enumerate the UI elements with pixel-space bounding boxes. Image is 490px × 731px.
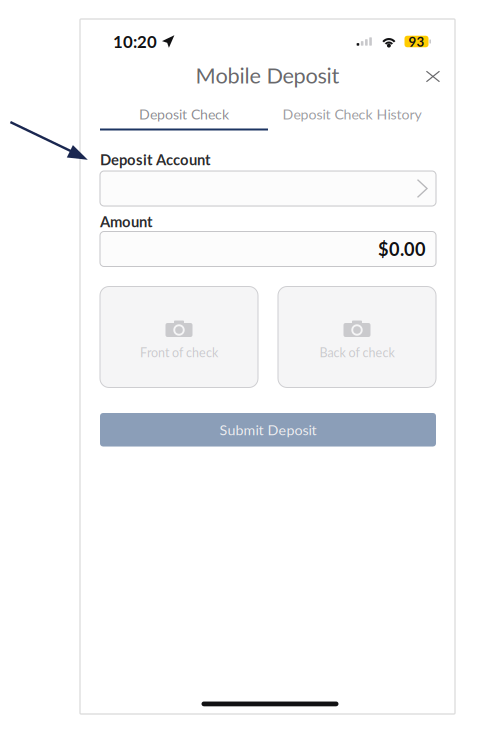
button[interactable]: Front of check — [100, 286, 258, 387]
staticText: $0.00 — [378, 238, 426, 260]
button[interactable]: Deposit Check — [100, 101, 268, 139]
staticText: Amount — [100, 213, 153, 230]
button[interactable]: Select deposit account — [100, 171, 436, 206]
button[interactable]: Submit Deposit — [100, 413, 436, 446]
staticText: Mobile Deposit — [195, 62, 339, 88]
staticText: Deposit Check — [139, 105, 229, 122]
button[interactable]: Back of check — [278, 286, 436, 387]
staticText: Deposit Check History — [282, 105, 421, 122]
button[interactable]: Deposit Check History — [268, 101, 436, 139]
staticText: 10:20 — [113, 31, 157, 52]
staticText: Deposit Account — [100, 151, 211, 168]
staticText: Front of check — [140, 345, 218, 360]
staticText: Back of check — [319, 345, 394, 360]
staticText: 93 — [408, 33, 424, 49]
staticText: Submit Deposit — [219, 421, 316, 438]
button[interactable]: Close — [418, 61, 448, 91]
